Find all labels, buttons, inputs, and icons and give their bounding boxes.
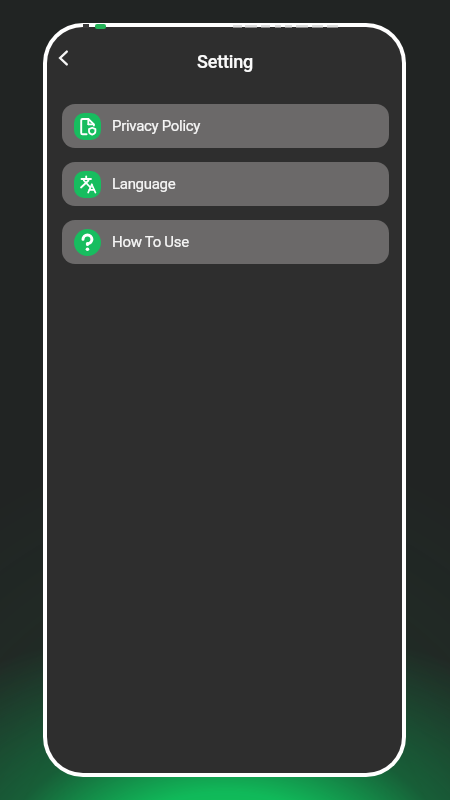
button[interactable]: Language [62, 162, 389, 206]
button[interactable]: How To Use [62, 220, 389, 264]
staticText: How To Use [112, 233, 189, 251]
staticText: Language [112, 175, 176, 193]
staticText: Setting [197, 51, 253, 72]
button[interactable]: Privacy Policy [62, 104, 389, 148]
button[interactable] [47, 40, 82, 76]
staticText: Privacy Policy [112, 117, 201, 135]
